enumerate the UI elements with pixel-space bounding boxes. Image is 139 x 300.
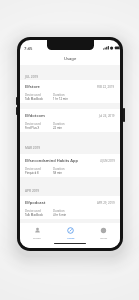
staticText: MAR 2019 — [25, 146, 41, 150]
staticText: Device used — [25, 209, 41, 213]
button[interactable]: Elfsecondsmind Habits App — [20, 154, 120, 177]
staticText: Elfsecondsmind Habits App — [25, 158, 79, 163]
staticText: Usage — [64, 56, 77, 62]
staticText: FEB 22, 2019 — [97, 85, 115, 89]
staticText: 7:45 — [24, 46, 33, 52]
staticText: 4 hr 6 min — [53, 213, 67, 217]
staticText: Talk MacBook — [25, 97, 43, 101]
button[interactable]: Profile — [20, 223, 54, 248]
staticText: 1 hr 12 min — [53, 97, 68, 101]
staticText: Device used — [25, 122, 41, 126]
staticText: APR 29, 2019 — [97, 201, 115, 205]
staticText: Profile — [33, 236, 41, 239]
staticText: Pinquick 8 — [25, 171, 39, 175]
staticText: Duration — [53, 209, 65, 213]
button[interactable]: Elfdotcom — [20, 109, 120, 132]
staticText: APR 2019 — [25, 189, 40, 193]
staticText: Duration — [53, 167, 65, 171]
staticText: Find Plus X — [25, 126, 40, 130]
button[interactable]: Elfstore — [20, 80, 120, 103]
staticText: Elfstore — [25, 84, 40, 89]
staticText: Elfpodcast — [25, 200, 46, 205]
staticText: 4 JUN 2019 — [100, 159, 115, 163]
button[interactable]: About — [87, 223, 120, 248]
staticText: Elfdotcom — [25, 113, 45, 118]
button[interactable]: Usage — [54, 223, 87, 248]
staticText: 58 min — [53, 171, 62, 175]
staticText: Device used — [25, 93, 41, 97]
staticText: Usage — [67, 236, 75, 239]
staticText: Device used — [25, 167, 41, 171]
staticText: About — [100, 236, 108, 239]
staticText: JUL 2019 — [25, 75, 39, 79]
staticText: Talk MacBook — [25, 213, 43, 217]
staticText: Duration — [53, 122, 65, 126]
staticText: 22 min — [53, 126, 62, 130]
staticText: Duration — [53, 93, 65, 97]
button[interactable]: Elfpodcast — [20, 196, 120, 219]
staticText: Jul 24, 2019 — [99, 114, 115, 118]
